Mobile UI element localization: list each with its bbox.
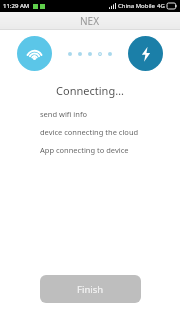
button[interactable]: send wifi info xyxy=(40,109,180,119)
button[interactable]: App connecting to device xyxy=(40,145,180,155)
staticText: send wifi info xyxy=(40,109,88,119)
button[interactable]: Power / device xyxy=(128,36,163,71)
button[interactable]: Wi-Fi connected xyxy=(17,36,52,71)
staticText: Connecting… xyxy=(56,83,124,98)
staticText: Finish xyxy=(77,283,104,296)
staticText: device connecting the cloud xyxy=(40,127,139,137)
button[interactable]: Finish xyxy=(40,275,141,303)
staticText: NEX xyxy=(80,14,100,28)
staticText: 11:29 AM xyxy=(3,2,30,10)
staticText: 4G xyxy=(157,2,165,10)
button[interactable]: device connecting the cloud xyxy=(40,127,180,137)
staticText: China Mobile xyxy=(118,2,155,10)
staticText: App connecting to device xyxy=(40,145,129,155)
